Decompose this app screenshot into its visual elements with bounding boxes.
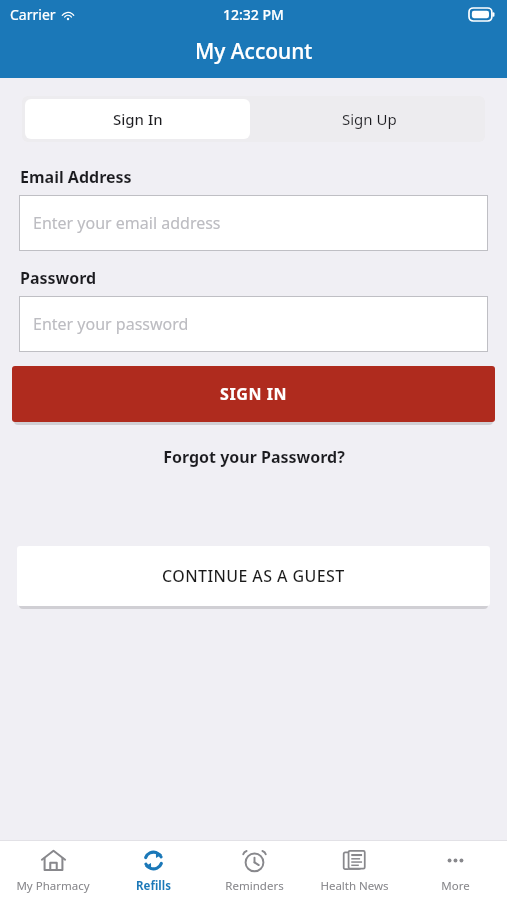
staticText: Enter your password bbox=[33, 313, 189, 335]
button[interactable]: Forgot your Password? bbox=[0, 446, 507, 468]
staticText: Carrier bbox=[10, 5, 56, 24]
staticText: Forgot your Password? bbox=[163, 446, 345, 468]
staticText: My Pharmacy bbox=[16, 878, 90, 894]
staticText: Enter your email address bbox=[33, 212, 221, 234]
button[interactable]: Enter your password bbox=[19, 296, 488, 352]
staticText: Password bbox=[20, 267, 97, 289]
button[interactable]: Enter your email address bbox=[19, 195, 488, 251]
staticText: Refills bbox=[136, 878, 171, 894]
staticText: Reminders bbox=[225, 878, 284, 894]
button[interactable]: Refills bbox=[105, 841, 201, 900]
button[interactable]: My Pharmacy bbox=[5, 841, 101, 900]
staticText: CONTINUE AS A GUEST bbox=[162, 565, 345, 587]
button[interactable]: Health News bbox=[306, 841, 402, 900]
button[interactable]: Sign Up bbox=[253, 96, 485, 142]
staticText: Sign Up bbox=[342, 109, 397, 129]
staticText: Health News bbox=[320, 878, 389, 894]
staticText: More bbox=[441, 878, 470, 894]
button[interactable]: Reminders bbox=[206, 841, 302, 900]
button[interactable]: SIGN IN bbox=[12, 366, 495, 422]
button[interactable]: More bbox=[407, 841, 503, 900]
staticText: My Account bbox=[195, 37, 313, 66]
staticText: Email Address bbox=[20, 166, 132, 188]
staticText: Sign In bbox=[113, 109, 163, 129]
button[interactable]: Sign In bbox=[25, 99, 250, 139]
staticText: SIGN IN bbox=[220, 383, 288, 405]
staticText: 12:32 PM bbox=[223, 5, 284, 24]
button[interactable]: CONTINUE AS A GUEST bbox=[17, 546, 490, 606]
